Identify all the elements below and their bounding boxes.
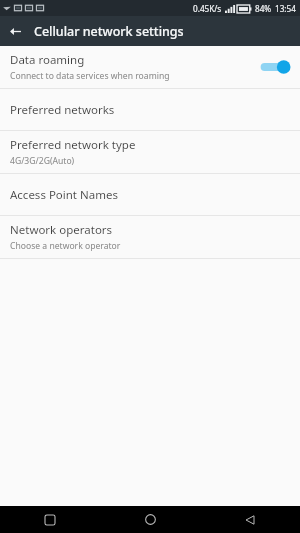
staticText: Choose a network operator: [10, 240, 121, 252]
staticText: 4G/3G/2G(Auto): [10, 155, 75, 167]
button[interactable]: Back: [0, 16, 30, 46]
button[interactable]: Data roaming: [0, 46, 300, 88]
staticText: 13:54: [275, 3, 296, 14]
staticText: Connect to data services when roaming: [10, 70, 170, 82]
staticText: Network operators: [10, 222, 113, 238]
staticText: Data roaming: [10, 52, 85, 68]
button[interactable]: Back: [200, 506, 300, 533]
button[interactable]: Preferred network type: [0, 131, 300, 173]
staticText: Preferred network type: [10, 137, 136, 153]
staticText: Preferred networks: [10, 102, 115, 118]
button[interactable]: Network operators: [0, 216, 300, 258]
staticText: 0.45K/s: [193, 3, 222, 14]
staticText: 84%: [255, 3, 272, 14]
button[interactable]: Home: [100, 506, 200, 533]
button[interactable]: Preferred networks: [0, 89, 300, 130]
button[interactable]: Data roaming: [260, 58, 292, 76]
button[interactable]: Access Point Names: [0, 174, 300, 215]
staticText: Access Point Names: [10, 187, 118, 203]
staticText: Cellular network settings: [34, 23, 184, 40]
button[interactable]: Recent apps: [0, 506, 100, 533]
